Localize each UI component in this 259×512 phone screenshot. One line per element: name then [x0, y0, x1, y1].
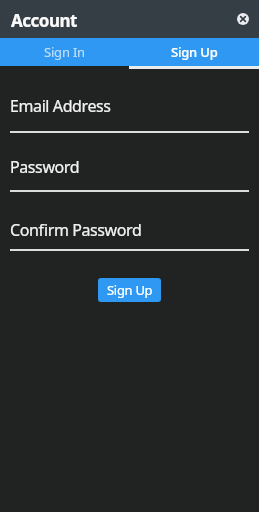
staticText: Email Address [10, 95, 111, 117]
staticText: Sign In [44, 43, 85, 61]
button[interactable]: Sign In [0, 38, 129, 66]
staticText: Account [11, 9, 77, 32]
staticText: Password [10, 156, 80, 178]
staticText: Sign Up [171, 43, 218, 61]
staticText: Confirm Password [10, 219, 142, 241]
button[interactable]: Sign Up [98, 278, 161, 302]
staticText: Sign Up [107, 281, 153, 299]
button[interactable]: Sign Up [129, 38, 259, 66]
button[interactable] [237, 13, 249, 25]
